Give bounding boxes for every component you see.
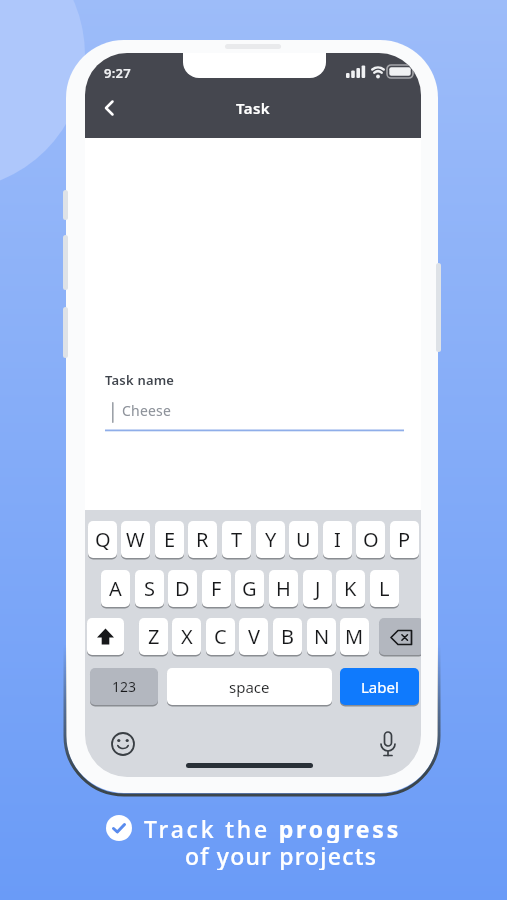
- staticText: M: [345, 623, 364, 650]
- button[interactable]: A: [101, 570, 130, 609]
- staticText: F: [211, 575, 222, 602]
- button[interactable]: S: [135, 570, 164, 609]
- button[interactable]: R: [188, 521, 217, 560]
- staticText: L: [379, 575, 390, 602]
- staticText: space: [229, 677, 270, 697]
- staticText: Label: [361, 677, 399, 697]
- button[interactable]: Q: [88, 521, 117, 560]
- staticText: 9:27: [104, 64, 132, 82]
- staticText: S: [144, 575, 155, 602]
- button[interactable]: U: [289, 521, 318, 560]
- button[interactable]: I: [323, 521, 352, 560]
- staticText: C: [214, 623, 227, 650]
- staticText: G: [242, 575, 257, 602]
- staticText: of your projects: [185, 840, 378, 870]
- button[interactable]: [379, 618, 421, 657]
- button[interactable]: Z: [139, 618, 168, 657]
- staticText: U: [296, 526, 311, 553]
- button[interactable]: M: [340, 618, 369, 657]
- staticText: X: [181, 623, 193, 650]
- staticText: Task name: [105, 371, 175, 389]
- button[interactable]: X: [172, 618, 201, 657]
- staticText: D: [175, 575, 190, 602]
- button[interactable]: Cheese: [105, 397, 404, 427]
- staticText: R: [196, 526, 209, 553]
- button[interactable]: L: [370, 570, 399, 609]
- staticText: T: [231, 526, 243, 553]
- button[interactable]: space: [167, 668, 332, 707]
- staticText: Cheese: [122, 401, 172, 420]
- button[interactable]: B: [273, 618, 302, 657]
- staticText: Q: [95, 526, 111, 553]
- button[interactable]: C: [206, 618, 235, 657]
- button[interactable]: D: [168, 570, 197, 609]
- staticText: Z: [148, 623, 160, 650]
- staticText: H: [276, 575, 291, 602]
- button[interactable]: G: [235, 570, 264, 609]
- button[interactable]: J: [303, 570, 332, 609]
- button[interactable]: Y: [256, 521, 285, 560]
- button[interactable]: 123: [90, 668, 158, 707]
- staticText: E: [164, 526, 176, 553]
- button[interactable]: F: [202, 570, 231, 609]
- button[interactable]: Task: [85, 97, 421, 119]
- staticText: Y: [265, 526, 277, 553]
- button[interactable]: O: [356, 521, 385, 560]
- staticText: O: [363, 526, 379, 553]
- button[interactable]: [93, 95, 127, 123]
- staticText: Task: [236, 98, 270, 118]
- button[interactable]: K: [336, 570, 365, 609]
- button[interactable]: V: [239, 618, 268, 657]
- staticText: W: [126, 526, 145, 553]
- staticText: V: [248, 623, 260, 650]
- staticText: K: [344, 575, 357, 602]
- button[interactable]: H: [269, 570, 298, 609]
- button[interactable]: [87, 618, 124, 657]
- button[interactable]: E: [155, 521, 184, 560]
- button[interactable]: P: [390, 521, 419, 560]
- staticText: B: [281, 623, 294, 650]
- staticText: I: [334, 526, 341, 553]
- staticText: J: [315, 575, 321, 602]
- button[interactable]: Label: [340, 668, 419, 707]
- button[interactable]: N: [307, 618, 336, 657]
- staticText: A: [109, 575, 122, 602]
- button[interactable]: T: [222, 521, 251, 560]
- staticText: P: [398, 526, 411, 553]
- button[interactable]: W: [121, 521, 150, 560]
- button[interactable]: [106, 815, 132, 841]
- staticText: N: [314, 623, 330, 650]
- staticText: 123: [112, 677, 137, 696]
- staticText: Track the progress: [144, 813, 402, 843]
